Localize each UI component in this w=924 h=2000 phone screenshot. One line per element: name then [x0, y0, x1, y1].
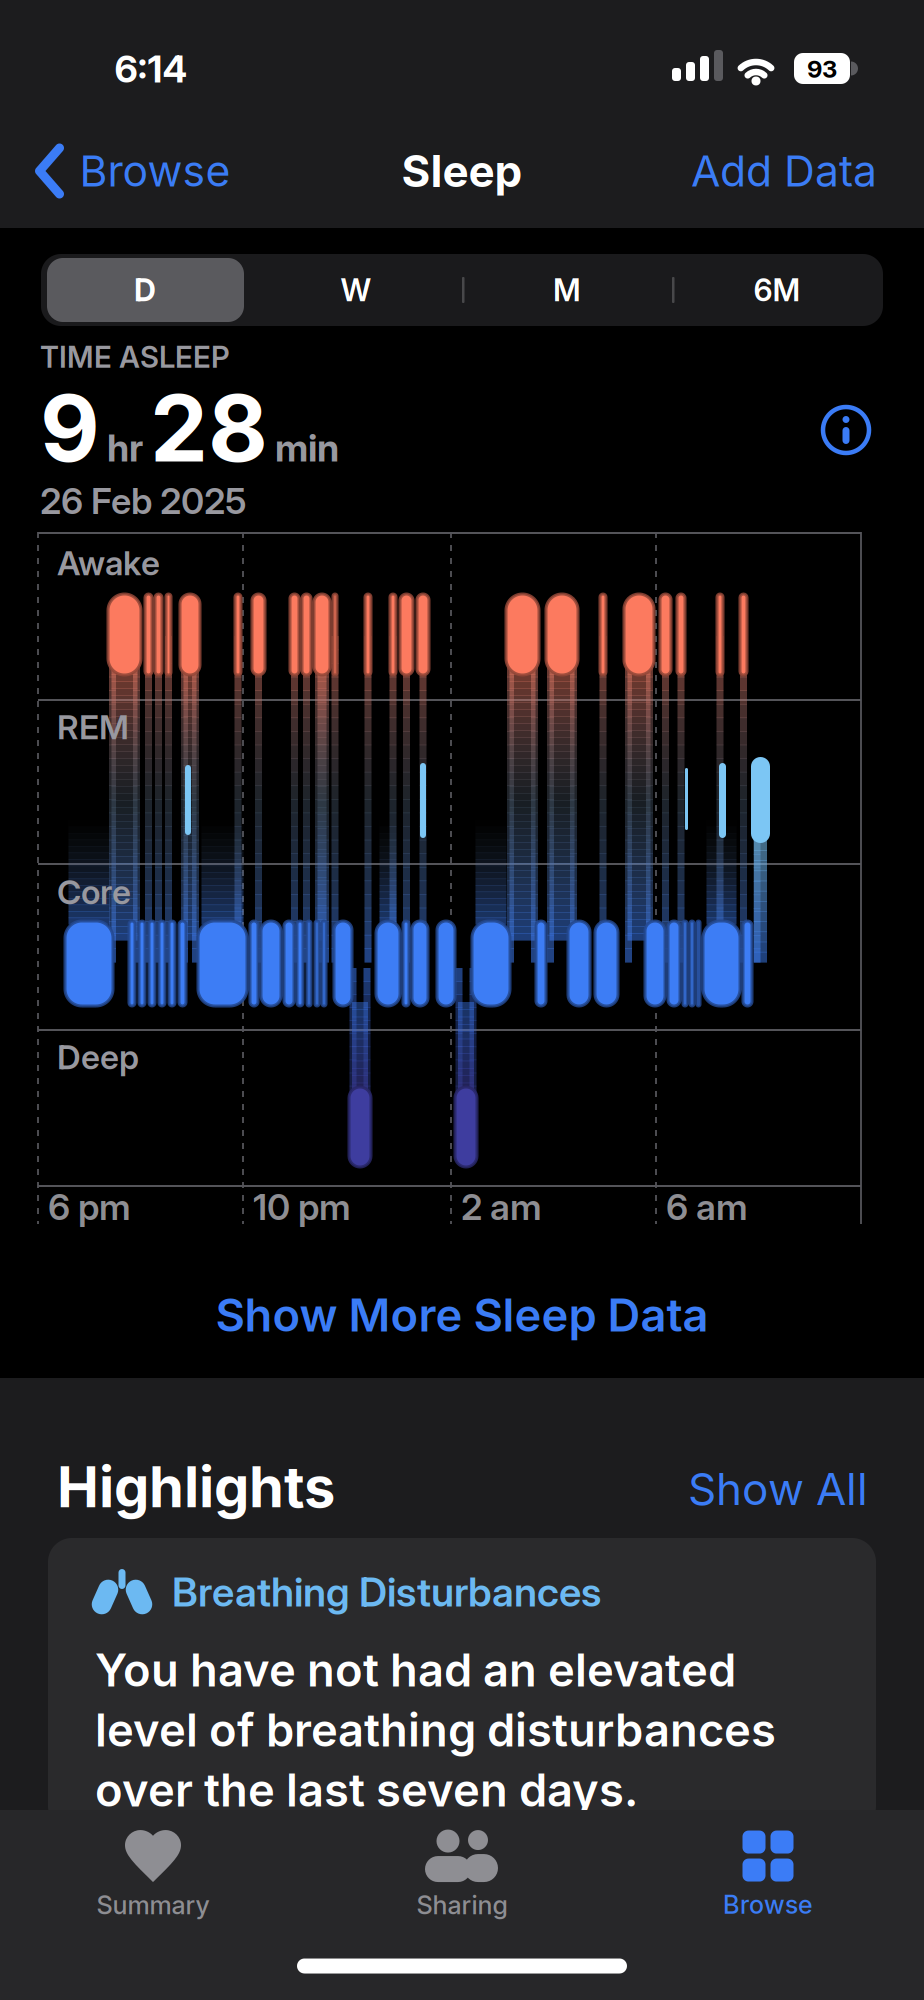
staticText: Core — [57, 872, 131, 912]
button[interactable]: About Time Asleep — [823, 407, 869, 453]
staticText: REM — [57, 707, 129, 747]
staticText: Browse — [723, 1890, 813, 1919]
staticText: 9 — [40, 374, 100, 482]
staticText: Sharing — [416, 1890, 507, 1920]
staticText: D — [134, 272, 156, 308]
staticText: Highlights — [57, 1454, 335, 1520]
staticText: 10 pm — [253, 1186, 351, 1228]
button[interactable]: M — [477, 258, 657, 322]
staticText: 6:14 — [114, 47, 187, 91]
button[interactable]: D — [55, 258, 235, 322]
button[interactable]: Show More Sleep Data — [215, 1288, 708, 1342]
staticText: Add Data — [691, 146, 877, 196]
button[interactable]: W — [266, 258, 446, 322]
staticText: 6 pm — [48, 1186, 131, 1228]
button[interactable]: Browse — [37, 146, 230, 196]
staticText: 6M — [753, 272, 800, 308]
staticText: 6 am — [666, 1186, 748, 1228]
staticText: Show All — [688, 1463, 868, 1515]
staticText: Show More Sleep Data — [215, 1288, 708, 1342]
staticText: 28 — [150, 374, 268, 482]
staticText: hr — [107, 426, 143, 470]
staticText: TIME ASLEEP — [40, 340, 230, 374]
button[interactable]: Show All — [688, 1463, 868, 1515]
staticText: Deep — [57, 1037, 139, 1077]
staticText: You have not had an elevated — [95, 1643, 736, 1697]
button[interactable]: Add Data — [691, 146, 877, 196]
staticText: M — [553, 272, 581, 308]
staticText: 93 — [807, 55, 837, 83]
button[interactable]: Browse — [723, 1831, 813, 1919]
staticText: Browse — [79, 146, 230, 196]
button[interactable] — [48, 1538, 876, 1830]
staticText: Breathing Disturbances — [172, 1568, 601, 1616]
staticText: Sleep — [401, 145, 522, 197]
button[interactable]: Summary — [96, 1830, 209, 1920]
staticText: min — [275, 426, 339, 470]
staticText: over the last seven days. — [95, 1763, 638, 1817]
staticText: Awake — [57, 543, 160, 583]
staticText: 26 Feb 2025 — [40, 480, 247, 522]
staticText: level of breathing disturbances — [95, 1703, 776, 1757]
button[interactable]: 6M — [687, 258, 867, 322]
staticText: 2 am — [461, 1186, 542, 1228]
button[interactable]: Sharing — [416, 1830, 507, 1920]
staticText: Summary — [96, 1890, 209, 1920]
staticText: W — [340, 272, 371, 308]
